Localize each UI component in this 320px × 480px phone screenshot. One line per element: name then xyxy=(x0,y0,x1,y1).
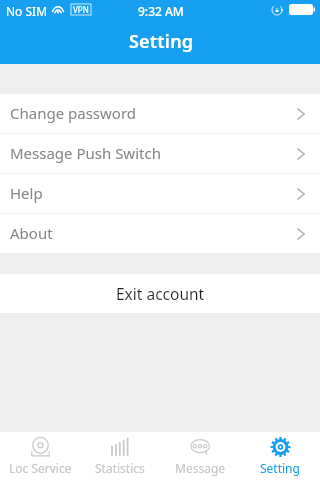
staticText: Loc Service xyxy=(9,460,72,476)
button[interactable]: Exit account xyxy=(0,274,320,313)
button[interactable]: Message Push Switch xyxy=(0,134,320,173)
staticText: Statistics xyxy=(95,460,145,476)
button[interactable]: Loc Service xyxy=(0,432,80,480)
staticText: 9:32 AM xyxy=(138,3,184,19)
staticText: Message Push Switch xyxy=(10,143,161,163)
staticText: Setting xyxy=(260,460,300,476)
button[interactable]: Help xyxy=(0,174,320,213)
staticText: About xyxy=(10,223,53,243)
button[interactable]: Statistics xyxy=(80,432,160,480)
staticText: Change password xyxy=(10,103,137,123)
button[interactable]: Message xyxy=(160,432,240,480)
staticText: VPN xyxy=(73,4,89,15)
staticText: Message xyxy=(175,460,226,476)
staticText: No SIM xyxy=(6,3,48,19)
staticText: Setting xyxy=(129,29,194,54)
button[interactable]: Setting xyxy=(240,432,320,480)
button[interactable]: About xyxy=(0,214,320,253)
staticText: Help xyxy=(10,183,43,203)
staticText: Exit account xyxy=(116,283,205,304)
button[interactable]: Change password xyxy=(0,94,320,133)
